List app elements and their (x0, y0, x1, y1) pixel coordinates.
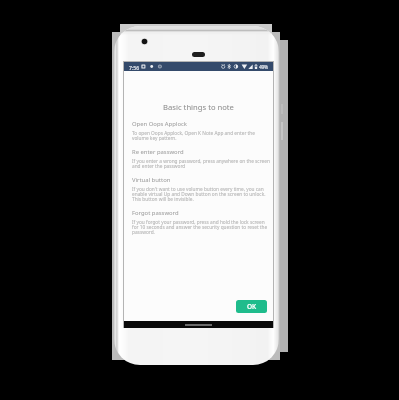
staticText: OK (247, 302, 257, 311)
staticText: Basic things to note (124, 102, 273, 112)
staticText: Virtual button (132, 176, 171, 184)
staticText: To open Oops Applock, Open K Note App an… (132, 130, 270, 142)
staticText: 7:56 (129, 64, 140, 71)
staticText: If you don't want to use volume button e… (132, 186, 270, 203)
staticText: If you enter a wrong password, press any… (132, 158, 270, 170)
button[interactable]: OK (236, 300, 267, 313)
staticText: Open Oops Applock (132, 120, 187, 128)
staticText: If you forgot your password, press and h… (132, 219, 270, 236)
staticText: Re enter password (132, 148, 184, 156)
staticText: 49% (259, 64, 268, 71)
staticText: Forgot password (132, 209, 179, 217)
